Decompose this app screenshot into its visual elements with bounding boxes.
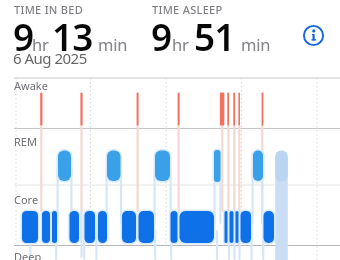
- staticText: hr: [172, 33, 189, 55]
- staticText: 13: [52, 11, 93, 61]
- staticText: Core: [14, 192, 39, 207]
- staticText: min: [241, 33, 271, 55]
- staticText: min: [98, 33, 128, 55]
- button[interactable]: [302, 24, 325, 47]
- staticText: hr: [32, 33, 49, 55]
- staticText: 51: [194, 11, 235, 61]
- staticText: 9: [151, 11, 172, 61]
- staticText: 9: [13, 11, 34, 61]
- staticText: TIME IN BED: [14, 2, 84, 17]
- staticText: Deep: [14, 249, 42, 260]
- staticText: Awake: [14, 78, 48, 93]
- staticText: TIME ASLEEP: [152, 2, 223, 17]
- staticText: 6 Aug 2025: [13, 48, 87, 68]
- staticText: REM: [14, 134, 37, 149]
